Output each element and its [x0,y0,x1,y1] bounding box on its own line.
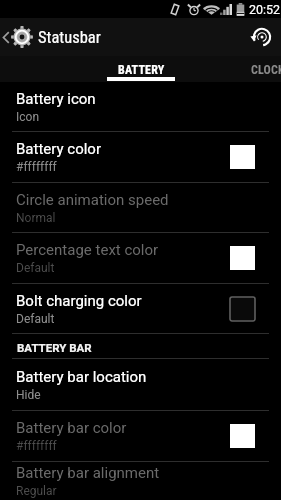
staticText: #ffffffff [16,439,57,453]
staticText: Battery icon [16,90,96,108]
staticText: Battery bar alignment [16,464,160,482]
staticText: Battery bar color [16,419,127,437]
staticText: Regular [16,484,57,498]
staticText: Battery color [16,140,101,158]
button[interactable]: Bolt charging color [0,284,281,333]
staticText: Default [16,312,55,326]
staticText: BATTERY [118,63,165,77]
staticText: Hide [16,388,41,402]
staticText: Circle animation speed [16,191,169,209]
staticText: #ffffffff [16,160,57,174]
button[interactable]: Circle animation speed [0,183,281,232]
button[interactable]: Battery icon [0,82,281,131]
staticText: Bolt charging color [16,292,142,310]
button[interactable]: CLOCK [240,56,281,82]
button[interactable]: Battery bar color [0,411,281,461]
staticText: BATTERY BAR [17,341,92,354]
staticText: Percentage text color [16,241,159,259]
button[interactable]: BATTERY [107,56,175,82]
button[interactable]: Battery bar location [0,359,281,410]
staticText: Battery bar location [16,368,147,386]
button[interactable]: Percentage text color [0,233,281,283]
staticText: Normal [16,211,56,225]
staticText: Statusbar [38,28,101,47]
button[interactable]: Back [0,18,37,56]
staticText: Default [16,261,55,275]
staticText: CLOCK [251,63,281,77]
other: Back [2,30,10,45]
button[interactable]: Battery color [0,132,281,182]
staticText: Icon [16,110,40,124]
staticText: 20:52 [249,2,281,17]
button[interactable]: Reset to defaults [243,18,281,56]
button[interactable]: Battery bar alignment [0,462,281,500]
